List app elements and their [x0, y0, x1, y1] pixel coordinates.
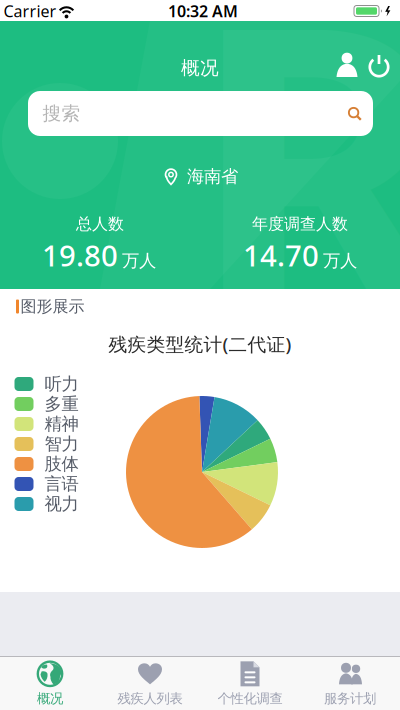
staticText: 视力 [44, 493, 78, 515]
staticText: 年度调查人数 [252, 214, 348, 234]
staticText: 言语 [44, 473, 78, 495]
button[interactable] [367, 53, 391, 78]
button[interactable]: 个性化调查 [200, 657, 300, 710]
staticText: 10:32 AM [168, 0, 238, 22]
button[interactable]: 服务计划 [300, 657, 400, 710]
staticText: 服务计划 [324, 690, 376, 707]
staticText: 肢体 [44, 453, 78, 475]
staticText: 残疾类型统计(二代证) [108, 332, 291, 356]
button[interactable]: 概况 [0, 657, 100, 710]
button[interactable]: 海南省 [164, 166, 238, 187]
staticText: 搜索 [42, 102, 80, 125]
staticText: 万人 [323, 250, 357, 271]
staticText: 万人 [122, 250, 156, 271]
staticText: R [189, 0, 400, 427]
staticText: 个性化调查 [217, 690, 282, 707]
staticText: 14.70 [243, 235, 319, 274]
staticText: 概况 [37, 690, 63, 707]
staticText: 残疾人列表 [117, 690, 182, 707]
staticText: 听力 [44, 373, 78, 395]
staticText: Carrier [3, 0, 56, 22]
staticText: 概况 [181, 56, 219, 79]
button[interactable]: 残疾人列表 [100, 657, 200, 710]
staticText: 海南省 [187, 166, 238, 187]
staticText: 总人数 [76, 214, 124, 234]
staticText: 精神 [44, 413, 78, 435]
staticText: 19.80 [42, 235, 118, 274]
staticText: 多重 [44, 393, 78, 415]
button[interactable]: 搜索 [28, 91, 373, 136]
staticText: 图形展示 [20, 297, 84, 316]
button[interactable] [335, 52, 359, 78]
staticText: 智力 [44, 433, 78, 455]
